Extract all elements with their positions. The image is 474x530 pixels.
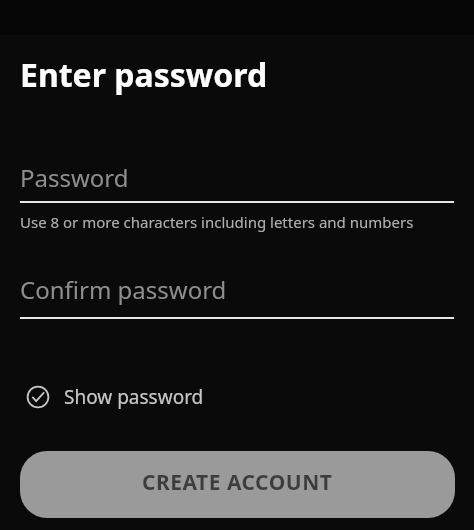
staticText: CREATE ACCOUNT [142,468,333,497]
button[interactable]: Password [20,160,454,203]
staticText: Use 8 or more characters including lette… [20,212,414,232]
button[interactable]: Confirm password [20,273,454,319]
staticText: Password [20,161,129,194]
staticText: Show password [64,384,204,410]
button[interactable]: CREATE ACCOUNT [20,451,455,518]
staticText: Enter password [20,53,268,97]
button[interactable]: Show password [20,382,204,412]
staticText: Confirm password [20,273,227,306]
